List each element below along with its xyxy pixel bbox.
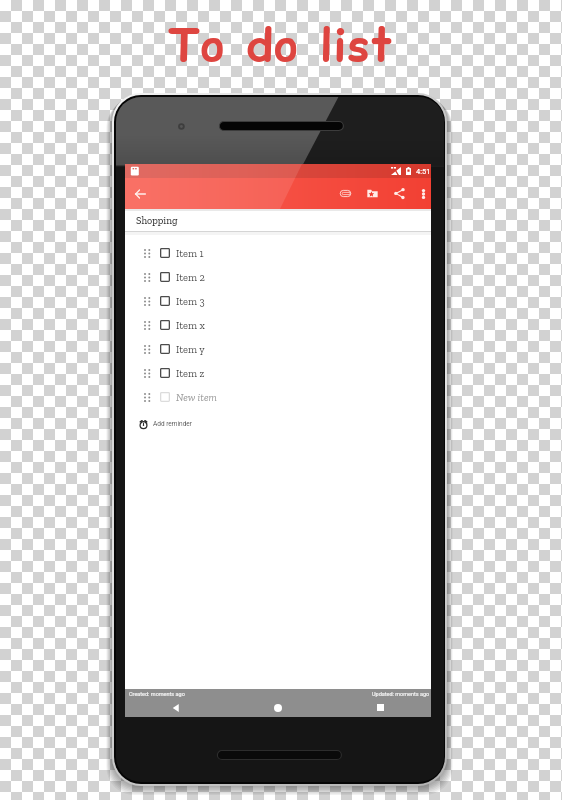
button[interactable]: Item 1 [125,241,431,265]
button[interactable]: Home [227,698,329,717]
staticText: Item 3 [176,295,205,308]
button[interactable]: Share [386,178,412,209]
button[interactable]: New item [125,385,431,409]
staticText: New item [176,391,217,404]
button[interactable]: Recent apps [329,698,431,717]
staticText: Shopping [136,215,178,227]
button[interactable]: Item 2 [125,265,431,289]
staticText: To do list [168,14,394,77]
button[interactable]: Item y [125,337,431,361]
staticText: Updated: moments ago [372,691,430,697]
button[interactable]: More options [410,178,436,209]
button[interactable]: Navigate up [127,178,153,209]
button[interactable]: Item x [125,313,431,337]
button[interactable]: Move to folder [359,178,385,209]
staticText: 4:51 [416,167,431,176]
staticText: Item z [176,367,205,380]
staticText: Item x [176,319,205,332]
staticText: Item 2 [176,271,205,284]
staticText: Created: moments ago [129,691,185,697]
staticText: Add reminder [153,420,192,428]
button[interactable]: Back [125,698,227,717]
button[interactable]: Attach file [332,178,358,209]
button[interactable]: Add reminder [125,414,431,434]
staticText: Item 1 [176,247,204,260]
button[interactable]: Item 3 [125,289,431,313]
button[interactable]: Item z [125,361,431,385]
staticText: Item y [176,343,205,356]
